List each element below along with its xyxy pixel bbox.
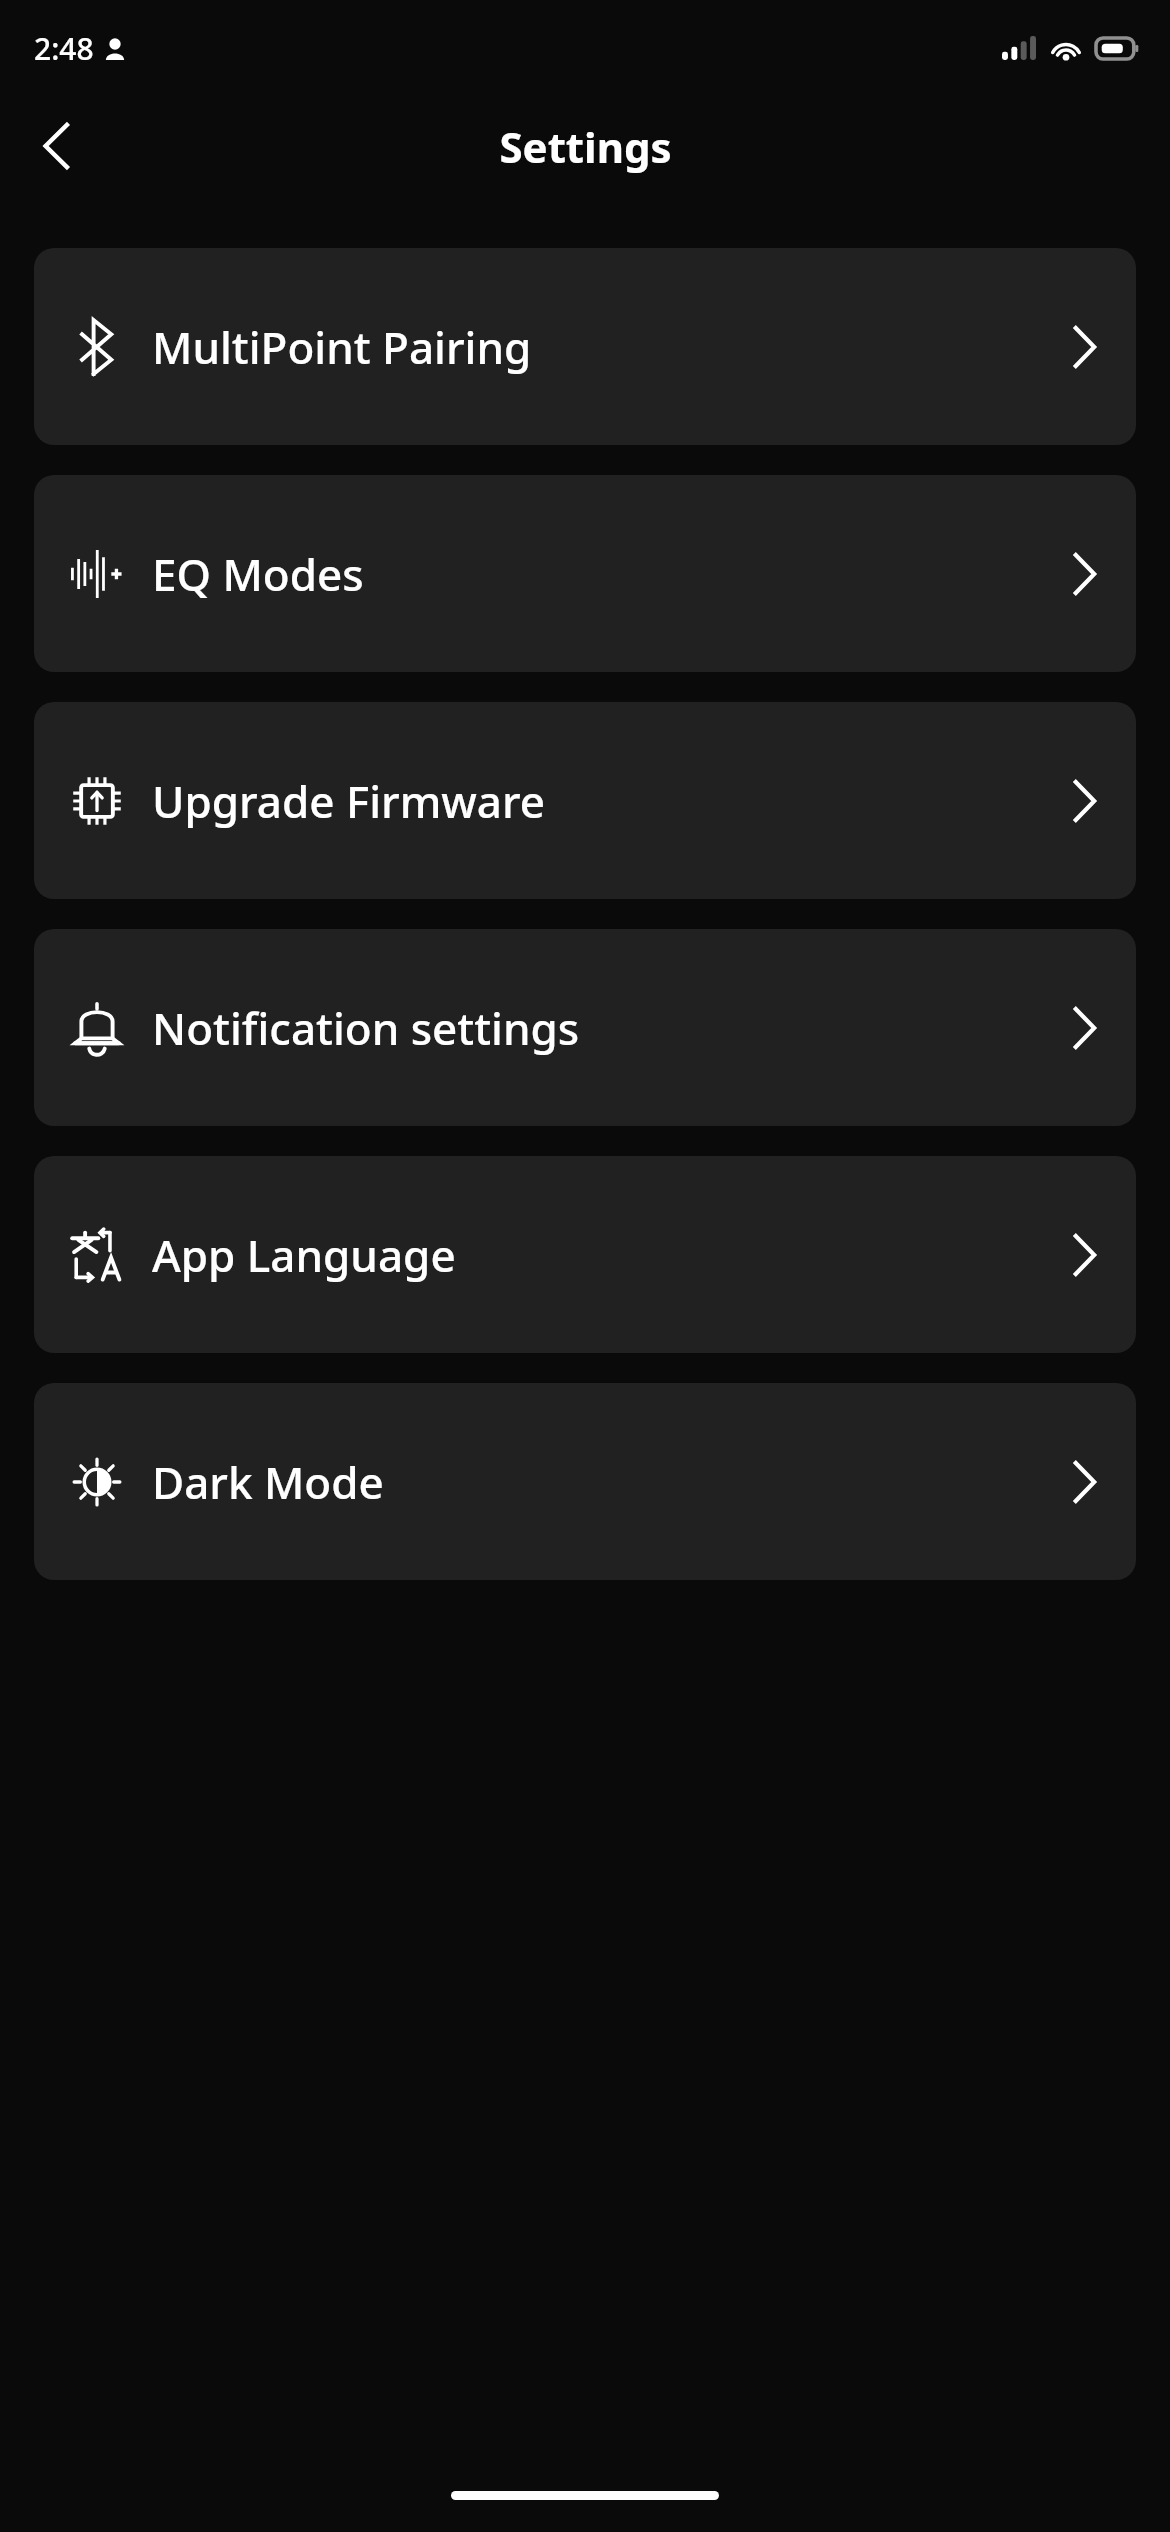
staticText: Notification settings <box>152 998 580 1058</box>
button[interactable]: App Language <box>34 1156 1136 1353</box>
button[interactable]: Notification settings <box>34 929 1136 1126</box>
button[interactable]: MultiPoint Pairing <box>34 248 1136 445</box>
staticText: Upgrade Firmware <box>152 771 545 831</box>
button[interactable]: EQ Modes <box>34 475 1136 672</box>
staticText: App Language <box>152 1225 456 1285</box>
staticText: Settings <box>499 118 672 175</box>
staticText: EQ Modes <box>152 544 364 604</box>
staticText: MultiPoint Pairing <box>152 317 532 377</box>
button[interactable]: Upgrade Firmware <box>34 702 1136 899</box>
button[interactable]: Back <box>18 108 94 184</box>
staticText: 2:48 <box>34 28 94 69</box>
staticText: Dark Mode <box>152 1452 384 1512</box>
button[interactable]: Dark Mode <box>34 1383 1136 1580</box>
